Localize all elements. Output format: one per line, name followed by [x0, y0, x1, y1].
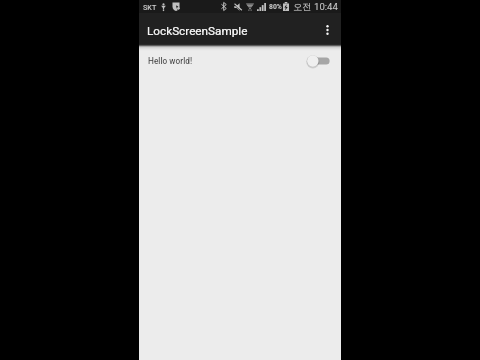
staticText: LockScreenSample — [147, 24, 248, 38]
staticText: 80% — [269, 3, 282, 11]
staticText: Hello world! — [148, 56, 193, 66]
button[interactable]: Toggle lock screen — [306, 54, 330, 68]
button[interactable]: More options — [316, 13, 338, 44]
staticText: SKT — [143, 3, 157, 11]
button[interactable]: Hello world! — [139, 48, 341, 74]
staticText: 오전 — [293, 1, 312, 13]
staticText: 10:44 — [314, 1, 338, 12]
